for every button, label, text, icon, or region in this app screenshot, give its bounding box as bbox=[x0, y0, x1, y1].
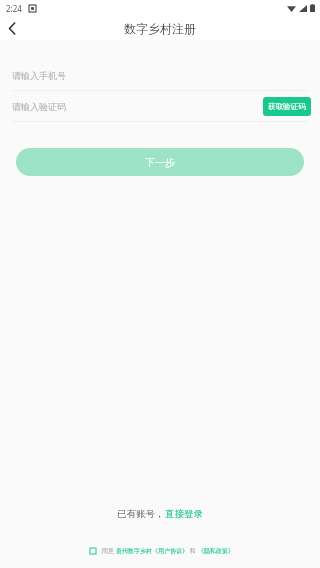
staticText: 请输入手机号 bbox=[12, 70, 66, 81]
button[interactable]: 请输入手机号 bbox=[0, 60, 320, 90]
staticText: 《隐私政策》 bbox=[198, 547, 234, 555]
staticText: 贵州数字乡村《用户协议》 bbox=[116, 547, 188, 555]
button[interactable]: 直接登录 bbox=[165, 508, 203, 520]
staticText: 同意 bbox=[102, 547, 116, 555]
staticText: 下一步 bbox=[145, 156, 175, 169]
button[interactable]: 返回 bbox=[0, 16, 24, 40]
button[interactable]: 请输入验证码 bbox=[0, 91, 320, 121]
staticText: 直接登录 bbox=[165, 508, 203, 520]
staticText: 获取验证码 bbox=[268, 102, 306, 111]
button[interactable]: 贵州数字乡村《用户协议》 bbox=[116, 547, 188, 555]
staticText: 和 bbox=[188, 547, 198, 555]
button[interactable]: 下一步 bbox=[16, 148, 304, 176]
staticText: 2:24 bbox=[6, 3, 22, 14]
button[interactable]: 《隐私政策》 bbox=[198, 547, 234, 555]
button[interactable]: 同意协议 bbox=[86, 544, 100, 558]
button[interactable]: 获取验证码 bbox=[263, 97, 311, 116]
staticText: 请输入验证码 bbox=[12, 101, 66, 112]
staticText: 已有账号， bbox=[117, 508, 165, 520]
staticText: 数字乡村注册 bbox=[124, 21, 196, 36]
